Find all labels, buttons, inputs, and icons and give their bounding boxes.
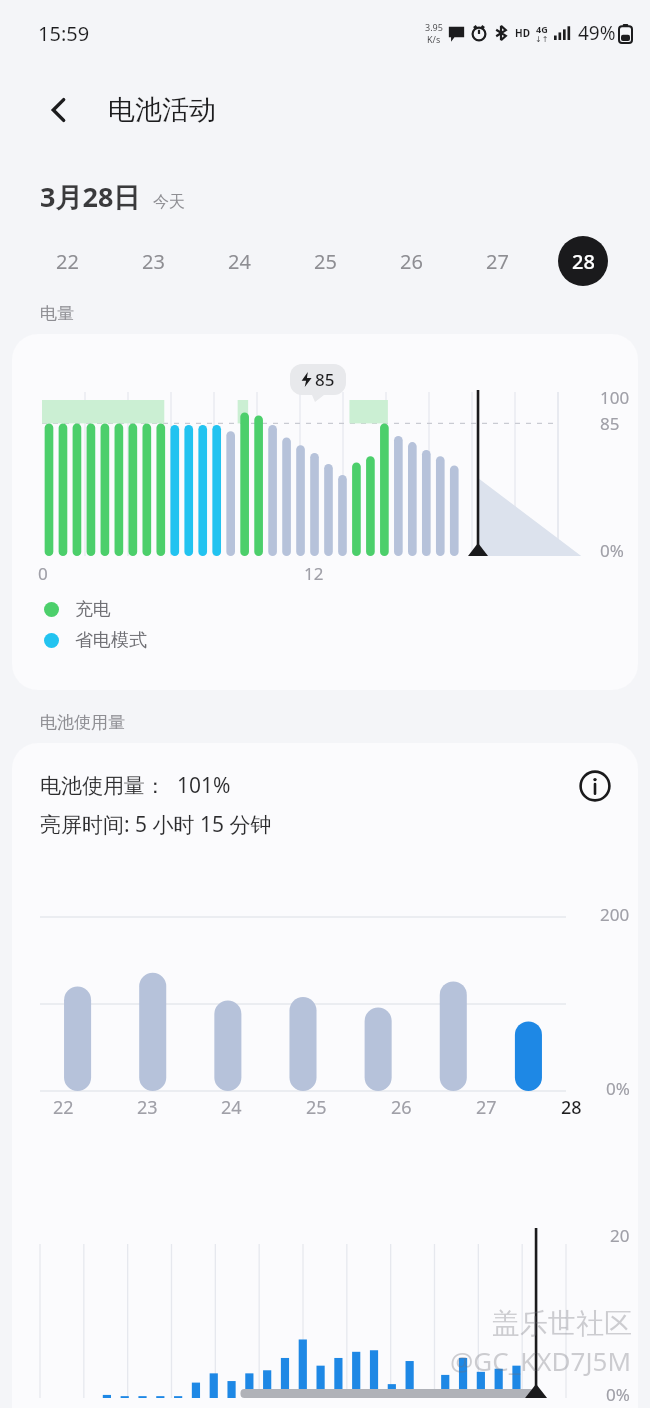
staticText: 充电: [75, 598, 111, 621]
staticText: 28: [572, 248, 595, 275]
staticText: 24: [221, 1095, 242, 1120]
staticText: HD: [515, 26, 530, 40]
staticText: 200: [600, 903, 630, 926]
staticText: 49%: [578, 20, 616, 46]
button[interactable]: 26: [368, 233, 454, 289]
button[interactable]: 27: [454, 233, 540, 289]
staticText: 省电模式: [75, 629, 147, 652]
staticText: 20: [610, 1224, 630, 1247]
staticText: 26: [400, 248, 423, 275]
staticText: 24: [228, 248, 251, 275]
staticText: 25: [314, 248, 337, 275]
staticText: 23: [137, 1095, 158, 1120]
staticText: 今天: [153, 192, 185, 212]
staticText: 电池使用量: [40, 712, 125, 733]
staticText: 3月28日: [40, 178, 141, 215]
staticText: 26: [391, 1095, 412, 1120]
staticText: 27: [486, 248, 509, 275]
staticText: 12: [304, 562, 324, 585]
staticText: 27: [476, 1095, 497, 1120]
staticText: @GC_KXD7J5M: [450, 1343, 632, 1378]
staticText: 23: [142, 248, 165, 275]
staticText: K/s: [427, 33, 441, 45]
staticText: 100: [600, 386, 630, 409]
staticText: 22: [56, 248, 79, 275]
staticText: 盖乐世社区: [492, 1306, 632, 1341]
staticText: 电池使用量： 101%: [40, 771, 231, 800]
button[interactable]: 100: [12, 334, 638, 690]
staticText: 电量: [40, 303, 74, 324]
staticText: 28: [561, 1095, 582, 1120]
button[interactable]: Info: [572, 763, 618, 809]
button[interactable]: 22: [24, 233, 110, 289]
button[interactable]: Back: [34, 85, 84, 135]
button[interactable]: 电池使用量： 101%: [12, 743, 638, 1408]
staticText: 22: [53, 1095, 74, 1120]
button[interactable]: 25: [282, 233, 368, 289]
staticText: 电池活动: [108, 93, 216, 127]
staticText: 0%: [600, 539, 624, 562]
staticText: 0: [38, 562, 48, 585]
staticText: 15:59: [38, 20, 90, 47]
staticText: 25: [306, 1095, 327, 1120]
staticText: 亮屏时间: 5 小时 15 分钟: [40, 810, 272, 839]
staticText: 85: [315, 368, 335, 391]
button[interactable]: 28: [540, 233, 626, 289]
staticText: 3.95: [425, 21, 443, 33]
button[interactable]: 23: [110, 233, 196, 289]
staticText: 4G: [536, 23, 548, 35]
staticText: 0%: [606, 1077, 630, 1100]
staticText: ↓↑: [535, 35, 549, 44]
staticText: 85: [600, 412, 620, 435]
button[interactable]: 24: [196, 233, 282, 289]
staticText: 0%: [606, 1383, 630, 1406]
